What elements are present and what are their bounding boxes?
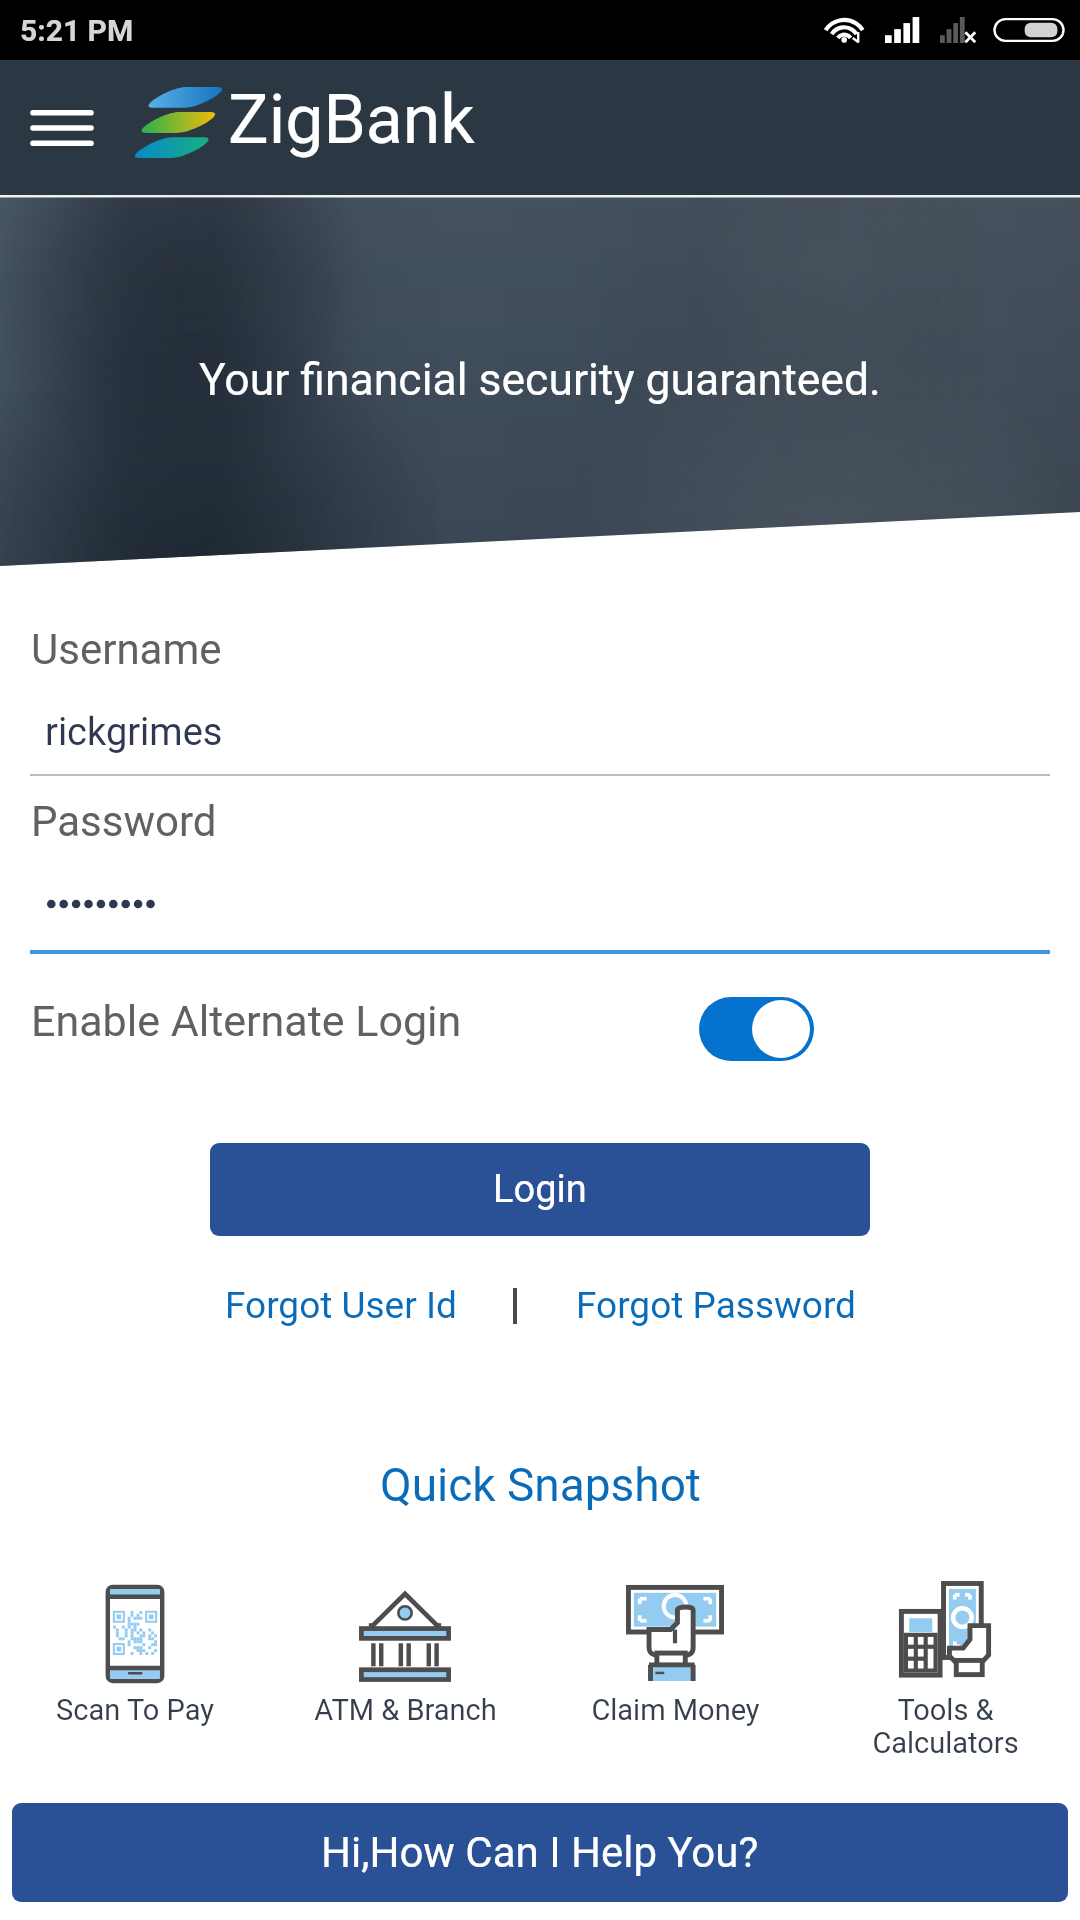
button[interactable]: Enable Alternate Login [699, 997, 814, 1061]
button[interactable]: Scan To Pay [0, 1583, 270, 1727]
staticText: Hi,How Can I Help You? [321, 1828, 759, 1877]
staticText: Username [31, 625, 222, 674]
button[interactable]: Forgot User Id [212, 1275, 470, 1335]
staticText: Quick Snapshot [380, 1458, 701, 1512]
button[interactable]: Open navigation menu [0, 60, 124, 195]
staticText: Forgot Password [576, 1284, 856, 1327]
staticText: Enable Alternate Login [31, 996, 462, 1046]
button[interactable]: Hi,How Can I Help You? [12, 1803, 1068, 1902]
staticText: 5:21 PM [20, 13, 134, 48]
button[interactable]: ATM & Branch [270, 1583, 540, 1727]
staticText: Your financial security guaranteed. [199, 354, 881, 406]
staticText: rickgrimes [45, 710, 223, 755]
staticText: Forgot User Id [225, 1284, 457, 1327]
button[interactable]: Forgot Password [560, 1275, 872, 1335]
button[interactable]: Claim Money [540, 1583, 810, 1727]
staticText: Scan To Pay [56, 1693, 214, 1727]
button[interactable]: Login [210, 1143, 870, 1236]
staticText: Password [31, 797, 217, 846]
staticText: Login [493, 1167, 587, 1212]
button[interactable]: Tools & Calculators [810, 1583, 1080, 1760]
staticText: ATM & Branch [314, 1693, 497, 1727]
staticText: Tools & Calculators [872, 1693, 1019, 1760]
staticText: ZigBank [228, 80, 475, 160]
staticText: Claim Money [591, 1693, 760, 1727]
